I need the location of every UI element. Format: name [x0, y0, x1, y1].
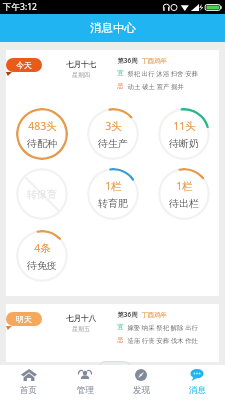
button[interactable]: 待断奶 [158, 108, 210, 160]
staticText: 首页 [20, 385, 37, 396]
staticText: 丁酉鸡年 [138, 310, 167, 319]
staticText: 下午3:12 [3, 1, 37, 13]
button[interactable]: 明天 [6, 312, 42, 326]
staticText: 嫁娶 纳采 祭祀 解除 出行 [124, 323, 198, 332]
staticText: 忌 [117, 336, 124, 344]
staticText: 管理 [77, 385, 94, 396]
staticText: 发现 [133, 385, 150, 396]
staticText: 星期四 [72, 71, 90, 79]
staticText: 第36周 [117, 56, 138, 65]
staticText: 第36周 [117, 310, 138, 319]
staticText: 待断奶 [169, 137, 199, 150]
staticText: 转育肥 [98, 197, 128, 210]
staticText: 动土 破土 置产 掘井 [124, 82, 184, 91]
staticText: 消息中心 [90, 21, 136, 35]
staticText: 忌 [117, 82, 124, 90]
staticText: 1栏 [105, 179, 122, 193]
button[interactable]: 首页 [0, 364, 57, 400]
staticText: 丁酉鸡年 [138, 56, 167, 65]
staticText: 转保育 [27, 188, 57, 201]
staticText: 483头 [28, 119, 57, 133]
button[interactable]: 今天 [6, 58, 42, 72]
staticText: 明天 [16, 314, 32, 324]
staticText: 11头 [173, 119, 196, 133]
button[interactable]: 待出栏 [158, 168, 210, 220]
staticText: 待免疫 [27, 259, 57, 272]
staticText: 宜 [117, 69, 124, 77]
staticText: 七月十八 [66, 314, 96, 323]
staticText: 今天 [16, 60, 32, 70]
staticText: 3头 [105, 119, 122, 133]
button[interactable]: 管理 [57, 364, 113, 400]
button[interactable]: 转保育 [16, 168, 68, 220]
staticText: 宜 [117, 323, 124, 331]
staticText: 1栏 [176, 179, 193, 193]
staticText: 七月十七 [66, 60, 96, 69]
staticText: 待出栏 [169, 197, 199, 210]
staticText: 4条 [34, 241, 51, 255]
staticText: 待配种 [27, 137, 57, 150]
button[interactable]: 待生产 [87, 108, 139, 160]
staticText: 星期五 [72, 325, 90, 333]
staticText: 祭祀 出行 沐浴 扫舍 安葬 [124, 69, 198, 78]
button[interactable]: 发现 [113, 364, 169, 400]
button[interactable]: 消息 [169, 364, 225, 400]
button[interactable]: 转育肥 [87, 168, 139, 220]
staticText: 待生产 [98, 137, 128, 150]
button[interactable]: 待免疫 [16, 230, 68, 282]
button[interactable]: 待配种 [16, 108, 68, 160]
staticText: 消息 [189, 385, 206, 396]
staticText: 造庙 行丧 安葬 伐木 作灶 [124, 336, 198, 345]
